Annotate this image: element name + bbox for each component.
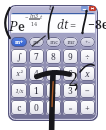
staticText: 1/x <box>15 87 24 95</box>
staticText: 7 <box>34 51 39 63</box>
button[interactable]: 8 <box>46 49 61 64</box>
staticText: m+ <box>15 39 23 46</box>
button[interactable]: 9 <box>63 49 78 64</box>
staticText: P <box>9 16 18 35</box>
button[interactable]: ∫ <box>11 49 27 64</box>
staticText: 4 <box>34 68 39 80</box>
button[interactable]: mr <box>63 37 78 47</box>
staticText: − <box>25 14 29 22</box>
staticText: = <box>70 17 77 32</box>
staticText: = <box>68 103 73 113</box>
button[interactable]: Minimize <box>8 5 98 121</box>
staticText: 14 <box>31 20 38 27</box>
button[interactable]: m- <box>29 37 44 47</box>
button[interactable]: mc <box>46 37 61 47</box>
staticText: ∫ <box>17 51 22 62</box>
button[interactable]: 1 <box>29 83 44 98</box>
staticText: 3 <box>68 85 73 97</box>
staticText: 5 <box>51 68 56 80</box>
button[interactable]: x² <box>11 66 27 81</box>
staticText: mr <box>67 39 75 46</box>
button[interactable]: . <box>46 100 61 115</box>
staticText: x² <box>16 69 23 78</box>
staticText: + <box>85 102 90 114</box>
button[interactable] <box>11 13 95 34</box>
staticText: e <box>18 18 25 34</box>
button[interactable]: x <box>80 66 95 81</box>
button[interactable]: + <box>80 100 95 115</box>
staticText: x <box>85 68 90 80</box>
staticText: 0 <box>34 102 39 114</box>
button[interactable]: 6 <box>63 66 78 81</box>
staticText: − <box>85 85 90 97</box>
button[interactable]: 4 <box>29 66 44 81</box>
staticText: ln3 <box>30 12 39 19</box>
staticText: 2 <box>68 66 79 92</box>
staticText: m- <box>33 39 40 46</box>
button[interactable]: 1/x <box>11 83 27 98</box>
staticText: −8e <box>88 16 106 32</box>
button[interactable]: m+ <box>11 37 27 47</box>
staticText: t <box>49 3 52 13</box>
button[interactable]: +- <box>80 37 95 47</box>
staticText: . <box>52 102 55 114</box>
staticText: 9 <box>68 51 73 63</box>
button[interactable]: 3 <box>63 83 78 98</box>
button[interactable]: 7 <box>29 49 44 64</box>
staticText: 1 <box>34 85 39 97</box>
staticText: dt <box>57 16 69 32</box>
staticText: +- <box>85 39 90 46</box>
button[interactable]: 2 <box>46 83 61 98</box>
button[interactable]: ÷ <box>80 49 95 64</box>
staticText: 6 <box>68 68 73 80</box>
staticText: c <box>17 102 22 114</box>
staticText: ÷ <box>85 51 90 63</box>
button[interactable]: Minimize <box>81 6 88 11</box>
button[interactable]: = <box>63 100 78 115</box>
staticText: 8 <box>51 51 56 63</box>
button[interactable]: 5 <box>46 66 61 81</box>
staticText: mc <box>50 39 58 46</box>
staticText: 2 <box>51 85 56 97</box>
button[interactable]: 0 <box>29 100 44 115</box>
button[interactable]: Close <box>89 6 96 11</box>
staticText: t <box>40 13 43 21</box>
button[interactable]: c <box>11 100 27 115</box>
button[interactable]: − <box>80 83 95 98</box>
